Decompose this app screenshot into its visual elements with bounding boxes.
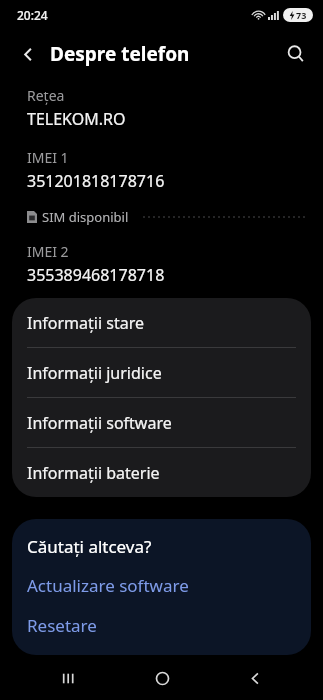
button[interactable]: Home: [137, 656, 187, 700]
staticText: Despre telefon: [50, 41, 190, 67]
staticText: Informații baterie: [27, 462, 160, 484]
button[interactable]: Recents: [43, 656, 93, 700]
button[interactable]: Informații juridice: [12, 348, 311, 397]
staticText: Căutați altceva?: [27, 535, 152, 558]
button[interactable]: Actualizare software: [27, 574, 296, 597]
staticText: Informații juridice: [27, 362, 162, 384]
button[interactable]: Back: [10, 36, 46, 72]
button[interactable]: Informații software: [12, 398, 311, 447]
button[interactable]: Informații baterie: [12, 448, 311, 497]
staticText: SIM disponibil: [42, 208, 129, 226]
staticText: IMEI 1: [27, 148, 69, 167]
staticText: IMEI 2: [27, 242, 69, 261]
staticText: 355389468178718: [27, 264, 165, 286]
staticText: Informații software: [27, 412, 172, 434]
button[interactable]: Informații stare: [12, 298, 311, 347]
button[interactable]: Resetare: [27, 614, 296, 637]
button[interactable]: Search: [277, 35, 315, 73]
staticText: Actualizare software: [27, 574, 189, 597]
staticText: Informații stare: [27, 312, 144, 334]
staticText: Resetare: [27, 614, 97, 637]
staticText: 20:24: [17, 7, 48, 23]
button[interactable]: Back: [230, 656, 280, 700]
staticText: Rețea: [27, 86, 65, 105]
staticText: 73: [296, 9, 307, 21]
staticText: 351201818178716: [27, 170, 165, 192]
staticText: TELEKOM.RO: [27, 108, 126, 130]
